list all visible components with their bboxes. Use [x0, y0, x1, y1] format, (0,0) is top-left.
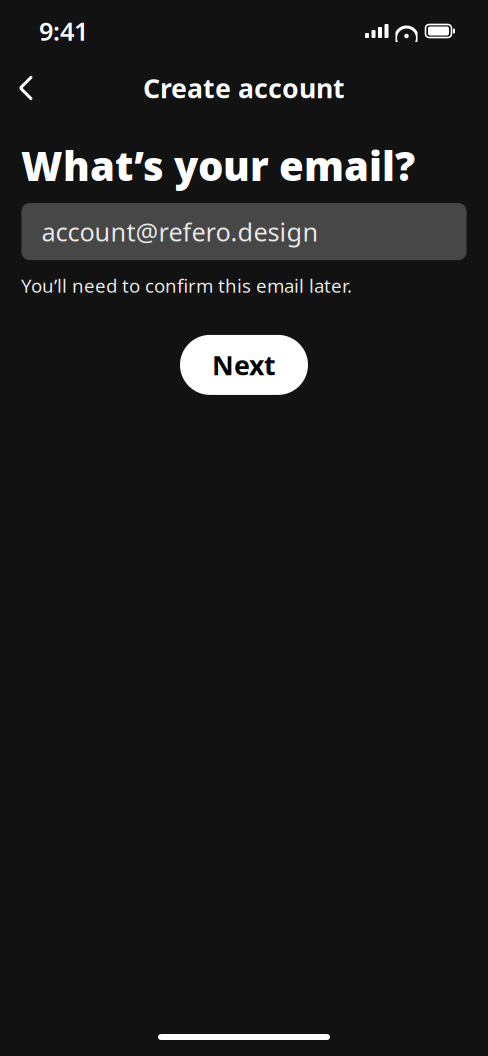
staticText: account@refero.design [41, 215, 318, 248]
staticText: Create account [143, 70, 345, 106]
button[interactable]: Next [180, 335, 308, 395]
staticText: What’s your email? [21, 139, 415, 192]
staticText: You’ll need to confirm this email later. [21, 273, 352, 298]
staticText: Next [212, 347, 276, 383]
staticText: 9:41 [39, 14, 88, 48]
button[interactable]: account@refero.design [21, 203, 466, 260]
button[interactable]: Back [0, 62, 52, 114]
